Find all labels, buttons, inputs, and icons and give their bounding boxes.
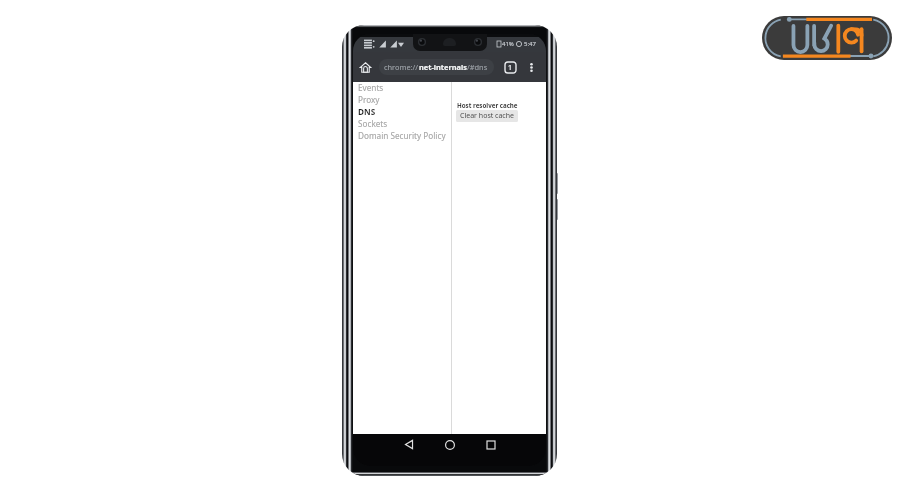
staticText: Proxy <box>358 94 380 105</box>
staticText: Host resolver cache <box>457 101 518 109</box>
button[interactable]: Home <box>439 434 460 455</box>
staticText: net-internals <box>419 62 467 72</box>
button[interactable]: Recent apps <box>480 434 501 455</box>
staticText: Clear host cache <box>460 111 514 121</box>
button[interactable]: Proxy <box>358 93 451 105</box>
button[interactable]: More options <box>523 52 540 82</box>
button[interactable]: UR19 logo <box>762 16 892 60</box>
button[interactable]: Back <box>398 434 419 455</box>
staticText: /#dns <box>467 62 488 72</box>
button[interactable]: Tabs <box>501 52 519 82</box>
staticText: 41% <box>502 40 514 48</box>
button[interactable]: Events <box>358 81 451 93</box>
staticText: 1 <box>508 63 513 73</box>
staticText: DNS <box>358 106 376 117</box>
button[interactable]: Home <box>356 52 375 82</box>
staticText: Events <box>358 82 384 93</box>
staticText: chrome:// <box>384 62 419 72</box>
button[interactable]: DNS <box>358 105 451 117</box>
button[interactable]: Clear host cache <box>456 110 518 122</box>
staticText: 5:47 <box>524 40 536 48</box>
button[interactable]: Sockets <box>358 117 451 129</box>
button[interactable]: Domain Security Policy <box>358 129 451 141</box>
staticText: Sockets <box>358 118 388 129</box>
staticText: Domain Security Policy <box>358 130 446 141</box>
button[interactable]: chrome:// <box>379 59 494 75</box>
